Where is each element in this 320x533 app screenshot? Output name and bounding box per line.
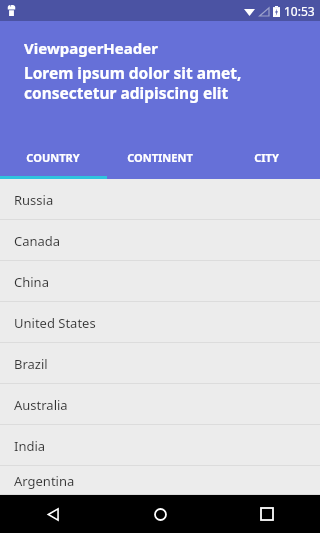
staticText: India <box>14 437 46 455</box>
button[interactable]: India <box>0 425 320 466</box>
button[interactable]: Canada <box>0 220 320 261</box>
staticText: Canada <box>14 232 61 250</box>
button[interactable]: Home <box>125 495 195 533</box>
button[interactable]: Recents <box>232 495 302 533</box>
staticText: Australia <box>14 396 68 414</box>
button[interactable]: China <box>0 261 320 302</box>
button[interactable]: CITY <box>213 135 320 179</box>
button[interactable]: United States <box>0 302 320 343</box>
staticText: CITY <box>254 150 279 165</box>
button[interactable]: Back <box>18 495 88 533</box>
button[interactable]: Australia <box>0 384 320 425</box>
staticText: Russia <box>14 191 54 209</box>
button[interactable]: Brazil <box>0 343 320 384</box>
staticText: COUNTRY <box>26 150 80 165</box>
staticText: ViewpagerHeader <box>24 38 158 58</box>
staticText: Argentina <box>14 472 75 490</box>
staticText: Lorem ipsum dolor sit amet, consectetur … <box>24 62 304 104</box>
staticText: 10:53 <box>284 3 315 19</box>
button[interactable]: COUNTRY <box>0 135 106 179</box>
staticText: United States <box>14 314 96 332</box>
button[interactable]: CONTINENT <box>106 135 213 179</box>
staticText: China <box>14 273 49 291</box>
staticText: CONTINENT <box>127 150 193 165</box>
button[interactable]: Russia <box>0 179 320 220</box>
button[interactable]: Argentina <box>0 466 320 495</box>
staticText: Brazil <box>14 355 48 373</box>
